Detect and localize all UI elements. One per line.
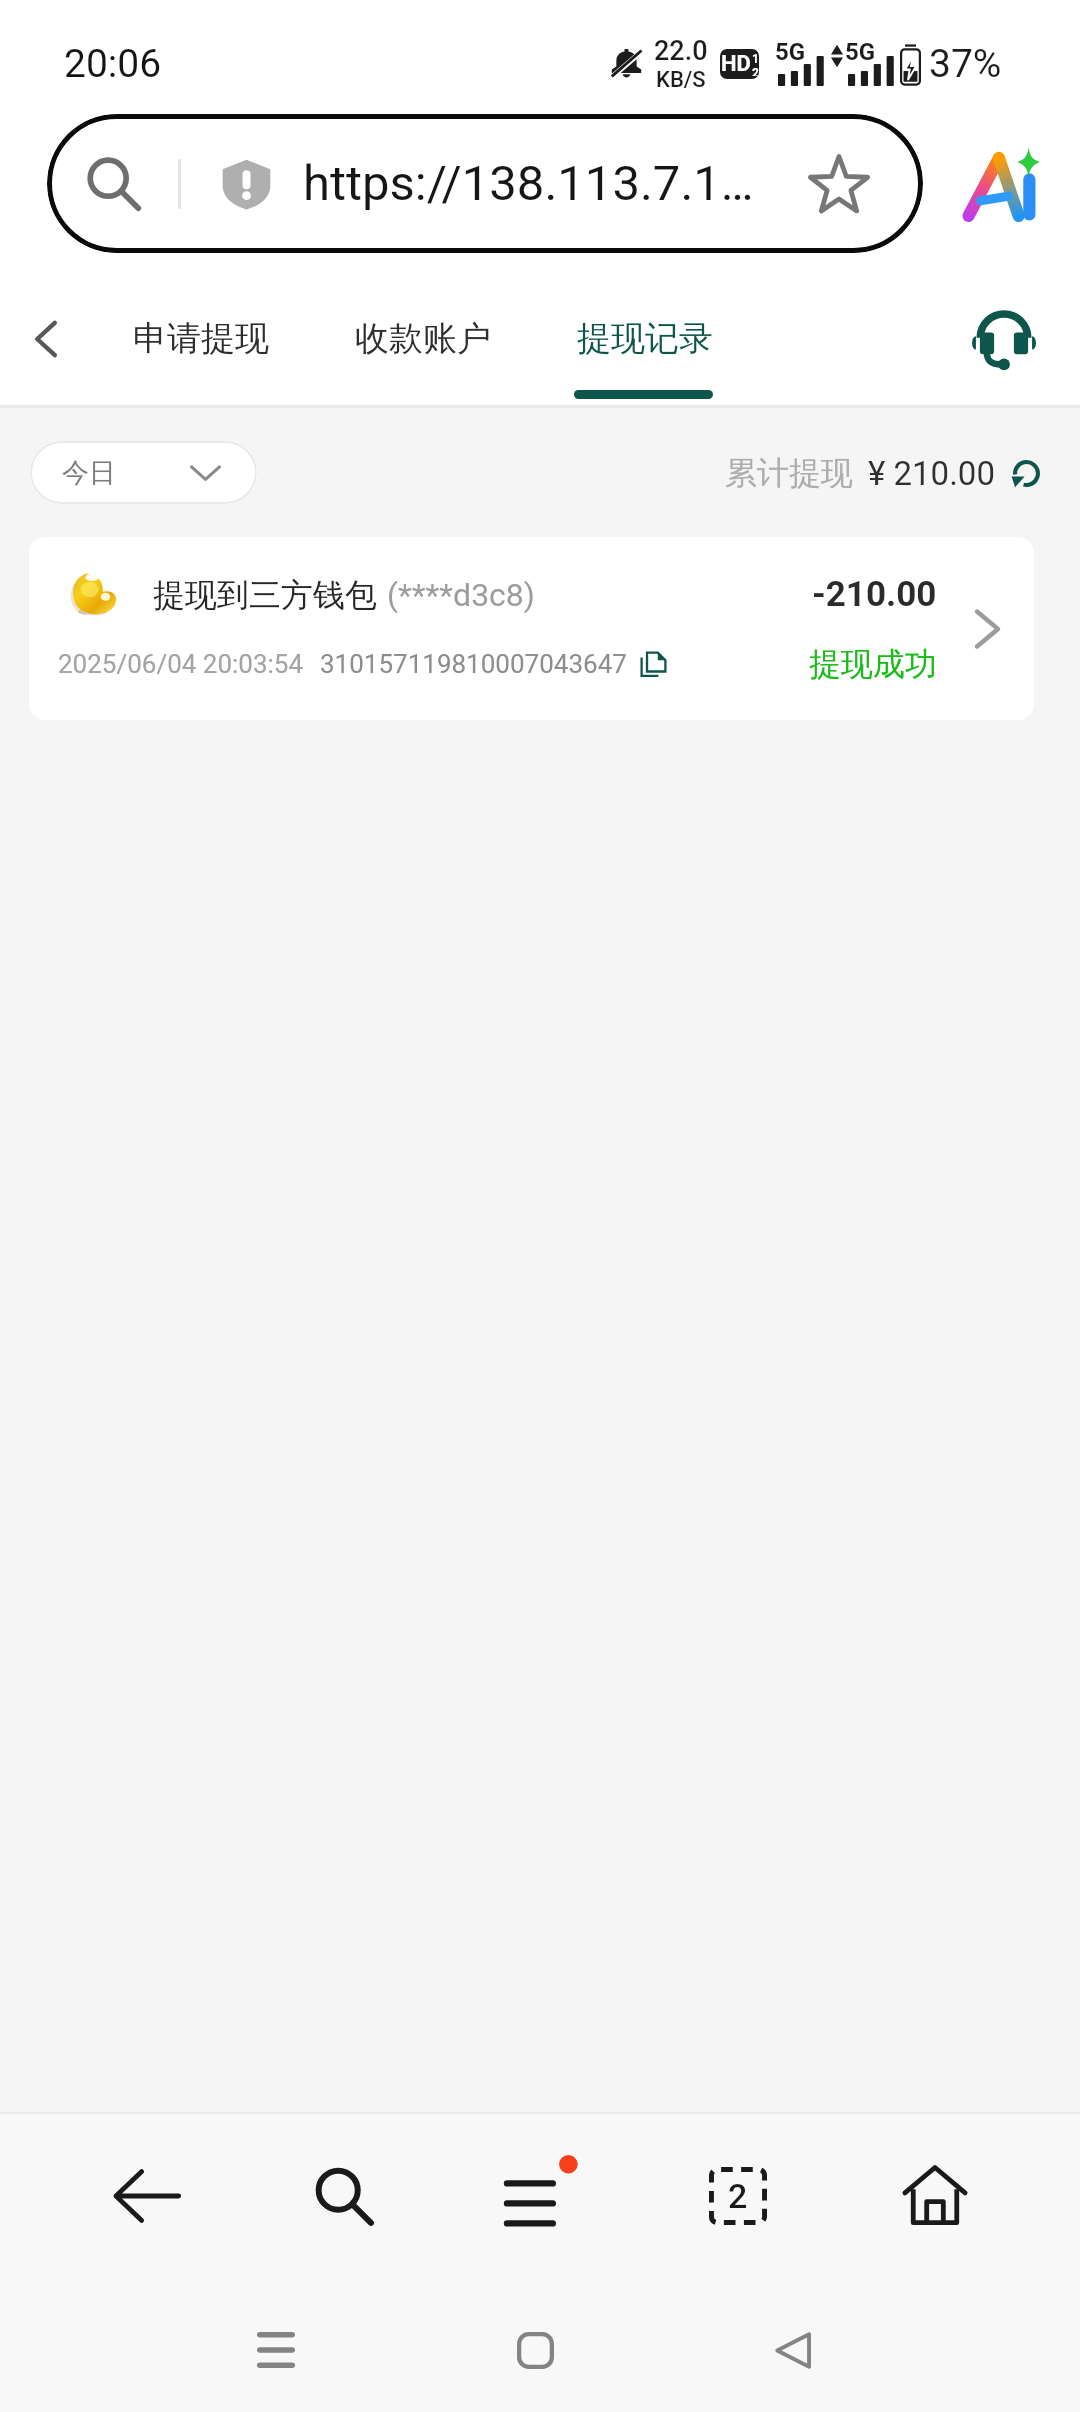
button[interactable]: Home: [485, 2300, 585, 2400]
staticText: 2: [752, 66, 759, 76]
other: Search: [85, 155, 143, 213]
staticText: 收款账户: [355, 317, 491, 360]
staticText: 37%: [929, 41, 1002, 87]
button[interactable]: AI assistant: [964, 146, 1040, 222]
staticText: KB/S: [656, 67, 706, 93]
button[interactable]: Search: [284, 2136, 404, 2256]
button[interactable]: Search: [47, 114, 923, 253]
button[interactable]: Tabs, 2 open: [678, 2136, 798, 2256]
button[interactable]: Back: [743, 2300, 843, 2400]
staticText: 2: [728, 2176, 748, 2216]
button[interactable]: Home: [875, 2136, 995, 2256]
button[interactable]: 提现记录: [577, 317, 713, 360]
button[interactable]: 申请提现: [133, 317, 269, 360]
staticText: 22.0: [654, 35, 708, 67]
staticText: 1: [752, 52, 759, 66]
button[interactable]: Back: [87, 2136, 207, 2256]
staticText: 累计提现: [725, 453, 853, 493]
button[interactable]: 收款账户: [355, 317, 491, 360]
staticText: (****d3c8): [387, 576, 535, 614]
staticText: https://138.113.7.1…: [303, 155, 754, 212]
button[interactable]: Copy order number: [635, 646, 671, 682]
staticText: HD: [721, 51, 751, 77]
button[interactable]: 提现到三方钱包: [29, 537, 1034, 720]
staticText: 今日: [62, 456, 116, 490]
staticText: 20:06: [64, 41, 162, 87]
staticText: -210.00: [812, 574, 937, 615]
button[interactable]: Menu: [481, 2136, 601, 2256]
staticText: 提现成功: [809, 644, 937, 684]
button[interactable]: Refresh: [1009, 456, 1043, 490]
staticText: 310157119810007043647: [320, 649, 627, 679]
other: Bookmark: [807, 152, 871, 216]
staticText: 5G: [845, 38, 876, 66]
staticText: 提现到三方钱包: [153, 575, 377, 615]
button[interactable]: 今日: [30, 441, 257, 504]
staticText: 申请提现: [133, 317, 269, 360]
staticText: 5G: [775, 38, 806, 66]
button[interactable]: Recent apps: [226, 2300, 326, 2400]
button[interactable]: Back: [12, 305, 80, 373]
staticText: 提现记录: [577, 317, 713, 360]
staticText: 2025/06/04 20:03:54: [58, 649, 304, 679]
staticText: ¥ 210.00: [868, 454, 995, 493]
button[interactable]: Customer service: [966, 301, 1042, 377]
